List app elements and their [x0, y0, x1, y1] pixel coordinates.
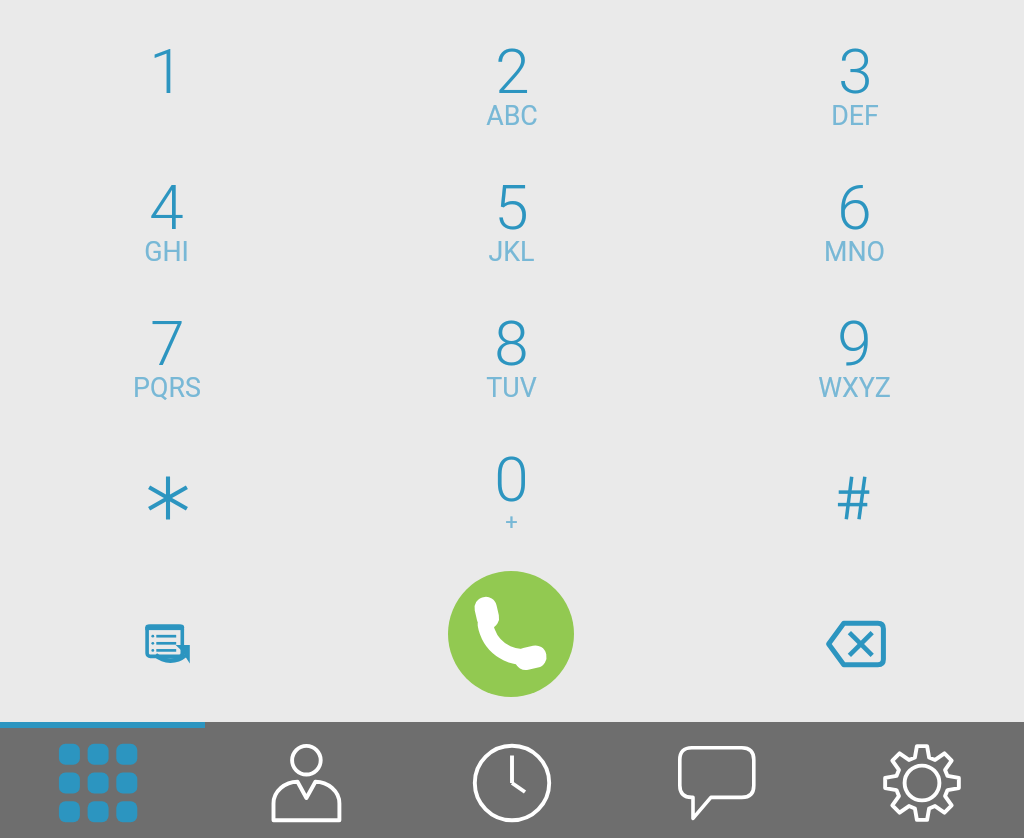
- staticText: ABC: [486, 100, 538, 131]
- staticText: 1: [149, 35, 184, 108]
- button[interactable]: 6: [684, 148, 1024, 284]
- staticText: 8: [494, 307, 529, 380]
- button[interactable]: 1: [0, 12, 337, 148]
- button[interactable]: 4: [0, 148, 337, 284]
- button[interactable]: 0: [341, 420, 682, 556]
- button[interactable]: Call: [448, 571, 574, 697]
- staticText: 9: [837, 307, 872, 380]
- button[interactable]: 5: [341, 148, 682, 284]
- button[interactable]: 7: [0, 284, 337, 420]
- staticText: 3: [838, 35, 873, 108]
- button[interactable]: Backspace: [806, 594, 906, 694]
- staticText: PQRS: [133, 372, 201, 403]
- staticText: +: [505, 510, 518, 536]
- button[interactable]: Pound: [794, 438, 914, 558]
- staticText: 0: [494, 443, 529, 516]
- staticText: 6: [837, 171, 872, 244]
- staticText: MNO: [824, 236, 885, 267]
- staticText: TUV: [486, 372, 537, 403]
- button[interactable]: 3: [684, 12, 1024, 148]
- button[interactable]: Recents: [409, 728, 614, 838]
- button[interactable]: Dialpad: [0, 728, 204, 838]
- button[interactable]: 9: [684, 284, 1024, 420]
- button[interactable]: 2: [341, 12, 682, 148]
- button[interactable]: Message: [123, 599, 213, 689]
- button[interactable]: Contacts: [204, 728, 409, 838]
- staticText: WXYZ: [818, 372, 891, 403]
- staticText: 5: [494, 171, 529, 244]
- staticText: DEF: [831, 100, 879, 131]
- staticText: 7: [150, 307, 185, 380]
- button[interactable]: Settings: [819, 728, 1024, 838]
- button[interactable]: 8: [341, 284, 682, 420]
- button[interactable]: Star: [108, 438, 228, 558]
- staticText: GHI: [144, 236, 189, 267]
- staticText: JKL: [488, 236, 535, 267]
- staticText: 2: [495, 35, 530, 108]
- button[interactable]: Messages: [614, 728, 819, 838]
- staticText: 4: [149, 171, 184, 244]
